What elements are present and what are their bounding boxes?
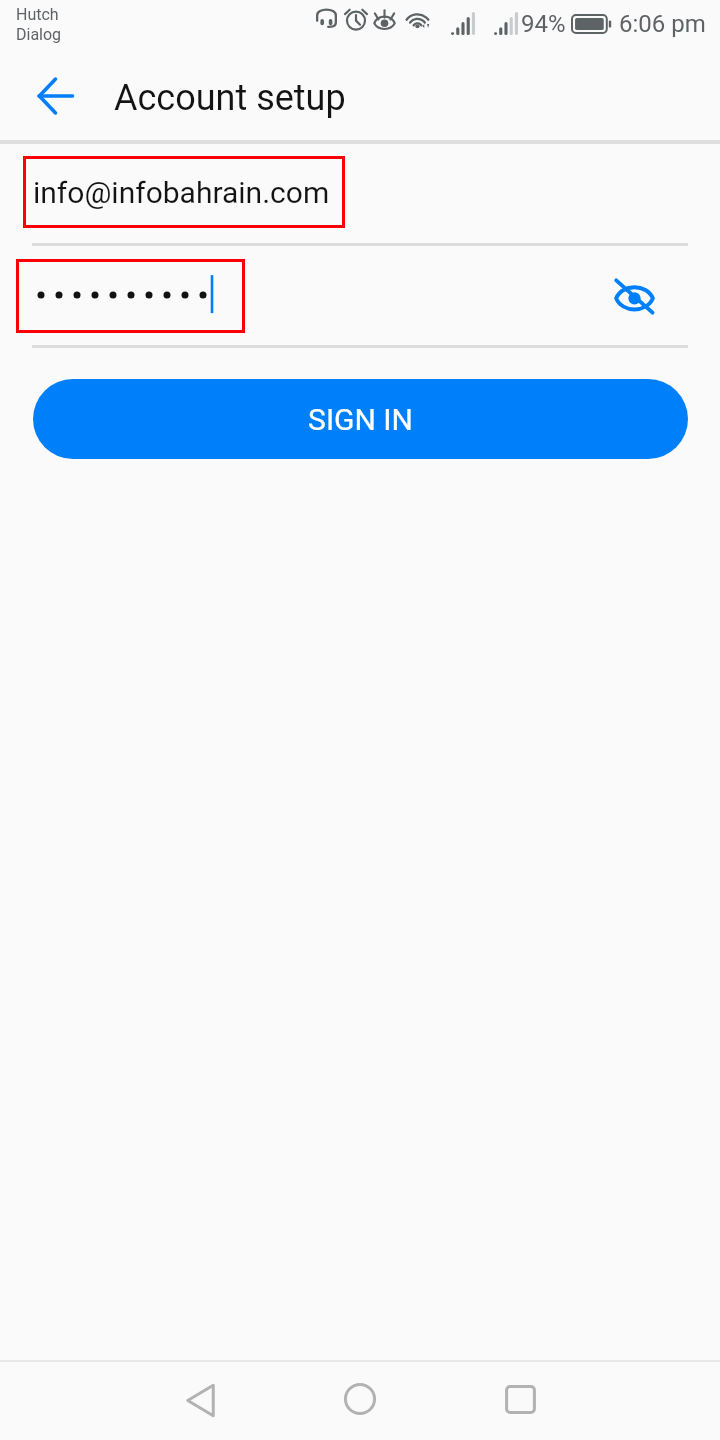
button[interactable]: Back [29, 70, 81, 122]
button[interactable]: Show password [611, 273, 657, 319]
staticText: Account setup [114, 77, 346, 119]
staticText: info@infobahrain.com [33, 175, 330, 210]
button[interactable]: Back [160, 1371, 240, 1431]
staticText: Hutch [16, 5, 59, 24]
button[interactable]: Recent apps [480, 1371, 560, 1431]
staticText: 6:06 pm [619, 10, 706, 38]
staticText: 94% [521, 10, 566, 38]
button[interactable]: Home [320, 1371, 400, 1431]
staticText: SIGN IN [308, 402, 413, 437]
staticText: Dialog [16, 25, 62, 44]
button[interactable]: info@infobahrain.com [23, 156, 345, 228]
button[interactable]: SIGN IN [33, 379, 688, 459]
button[interactable] [16, 259, 245, 333]
